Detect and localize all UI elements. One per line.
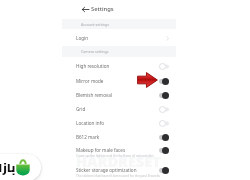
staticText: بازار [0, 156, 16, 178]
staticText: Sticker storage optimization [76, 167, 137, 173]
staticText: Mirror mode [76, 78, 104, 84]
other: Highlighted setting [137, 72, 158, 88]
button[interactable]: Grid [62, 102, 176, 116]
button[interactable]: High resolution [62, 59, 176, 73]
button[interactable]: Back [79, 3, 91, 15]
staticText: Location info [76, 120, 105, 126]
button[interactable]: Makeup for male faces [62, 143, 176, 163]
staticText: Grid [76, 106, 86, 112]
staticText: Camera settings [81, 49, 109, 54]
staticText: Makeup for male faces [76, 147, 126, 153]
button[interactable]: Sticker storage optimization [62, 163, 176, 180]
button[interactable]: B612 mark [62, 130, 176, 144]
button[interactable]: Login [62, 31, 176, 45]
staticText: HARDRESET [76, 151, 161, 171]
button[interactable]: Mirror mode [62, 74, 176, 88]
staticText: B612 mark [76, 134, 100, 140]
button[interactable]: Location info [62, 116, 176, 130]
staticText: Cover up the lighter and fix the flaws o… [76, 154, 154, 158]
staticText: Account settings [81, 22, 110, 27]
staticText: Blemish removal [76, 92, 112, 98]
button[interactable]: Cafe Bazaar [0, 154, 41, 180]
staticText: High resolution [76, 63, 110, 69]
staticText: Login [76, 35, 89, 41]
button[interactable]: Blemish removal [62, 88, 176, 102]
staticText: Settings [91, 5, 114, 13]
staticText: The stickers that haven't been used for … [76, 174, 160, 178]
